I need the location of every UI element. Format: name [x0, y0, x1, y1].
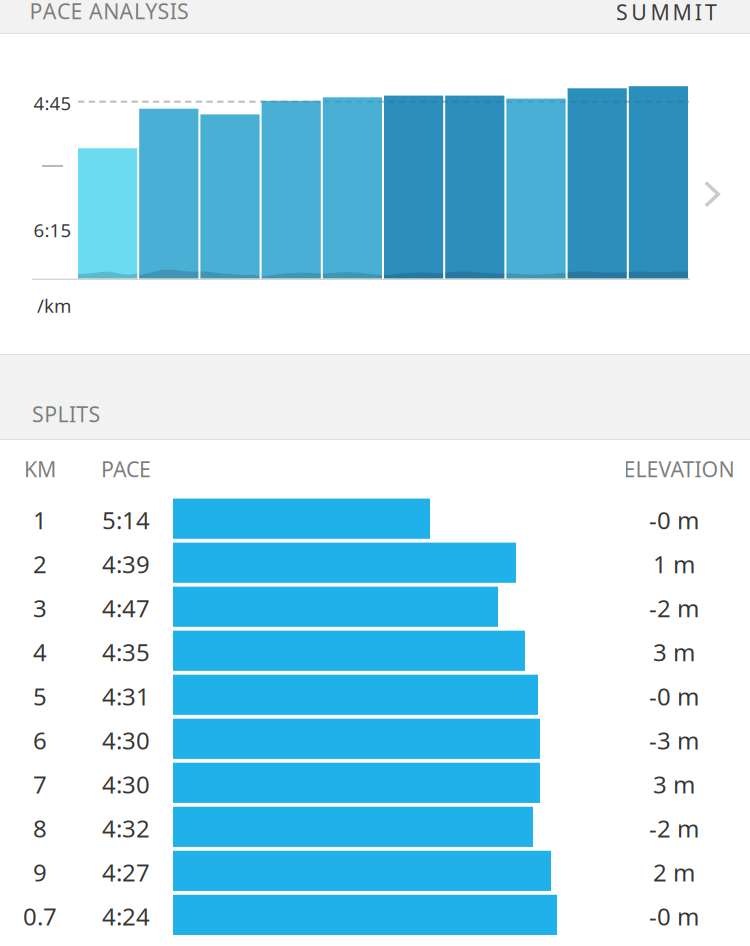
- staticText: L: [134, 0, 145, 25]
- staticText: A: [89, 0, 103, 25]
- staticText: 3: [33, 592, 47, 624]
- staticText: S: [616, 0, 628, 26]
- staticText: 4: [33, 636, 47, 668]
- staticText: I: [170, 0, 177, 25]
- staticText: 1 m: [653, 548, 695, 580]
- staticText: 4:30: [102, 768, 150, 800]
- staticText: -0 m: [649, 680, 699, 712]
- staticText: M: [673, 0, 692, 26]
- staticText: S: [32, 400, 44, 428]
- staticText: PACE: [101, 455, 151, 483]
- staticText: U: [631, 0, 647, 26]
- staticText: 1: [33, 504, 47, 536]
- staticText: -2 m: [649, 812, 699, 844]
- staticText: T: [76, 400, 88, 428]
- staticText: 0.7: [23, 900, 57, 932]
- button[interactable]: S: [557, 0, 717, 28]
- staticText: 5:14: [102, 504, 150, 536]
- staticText: -2 m: [649, 592, 699, 624]
- staticText: I: [695, 0, 702, 26]
- staticText: E: [70, 0, 82, 25]
- staticText: C: [57, 0, 70, 25]
- staticText: -3 m: [649, 724, 699, 756]
- staticText: -0 m: [649, 900, 699, 932]
- staticText: A: [43, 0, 57, 25]
- staticText: 3 m: [653, 768, 695, 800]
- staticText: 6:15: [33, 218, 71, 242]
- staticText: S: [177, 0, 189, 25]
- staticText: P: [44, 400, 57, 428]
- staticText: 7: [33, 768, 47, 800]
- staticText: S: [157, 0, 169, 25]
- staticText: 4:30: [102, 724, 150, 756]
- staticText: KM: [24, 455, 56, 483]
- staticText: /km: [37, 293, 71, 318]
- staticText: 4:31: [102, 680, 150, 712]
- staticText: 4:39: [102, 548, 150, 580]
- staticText: 3 m: [653, 636, 695, 668]
- staticText: T: [705, 0, 717, 26]
- staticText: 2: [33, 548, 47, 580]
- staticText: S: [88, 400, 100, 428]
- staticText: 4:24: [102, 900, 150, 932]
- staticText: ELEVATION: [623, 455, 734, 483]
- staticText: 4:35: [102, 636, 150, 668]
- staticText: M: [650, 0, 669, 26]
- staticText: 4:47: [102, 592, 150, 624]
- staticText: 2 m: [653, 856, 695, 888]
- staticText: 6: [33, 724, 47, 756]
- staticText: 5: [33, 680, 47, 712]
- staticText: 4:45: [33, 91, 71, 115]
- staticText: N: [103, 0, 119, 25]
- staticText: Y: [145, 0, 157, 25]
- staticText: 9: [33, 856, 47, 888]
- button[interactable]: P: [29, 0, 249, 27]
- button[interactable]: Next lap: [0, 0, 750, 946]
- staticText: P: [29, 0, 42, 25]
- staticText: 8: [33, 812, 47, 844]
- staticText: L: [58, 400, 69, 428]
- staticText: I: [69, 400, 76, 428]
- staticText: 4:27: [102, 856, 150, 888]
- staticText: -0 m: [649, 504, 699, 536]
- staticText: 4:32: [102, 812, 150, 844]
- staticText: A: [120, 0, 134, 25]
